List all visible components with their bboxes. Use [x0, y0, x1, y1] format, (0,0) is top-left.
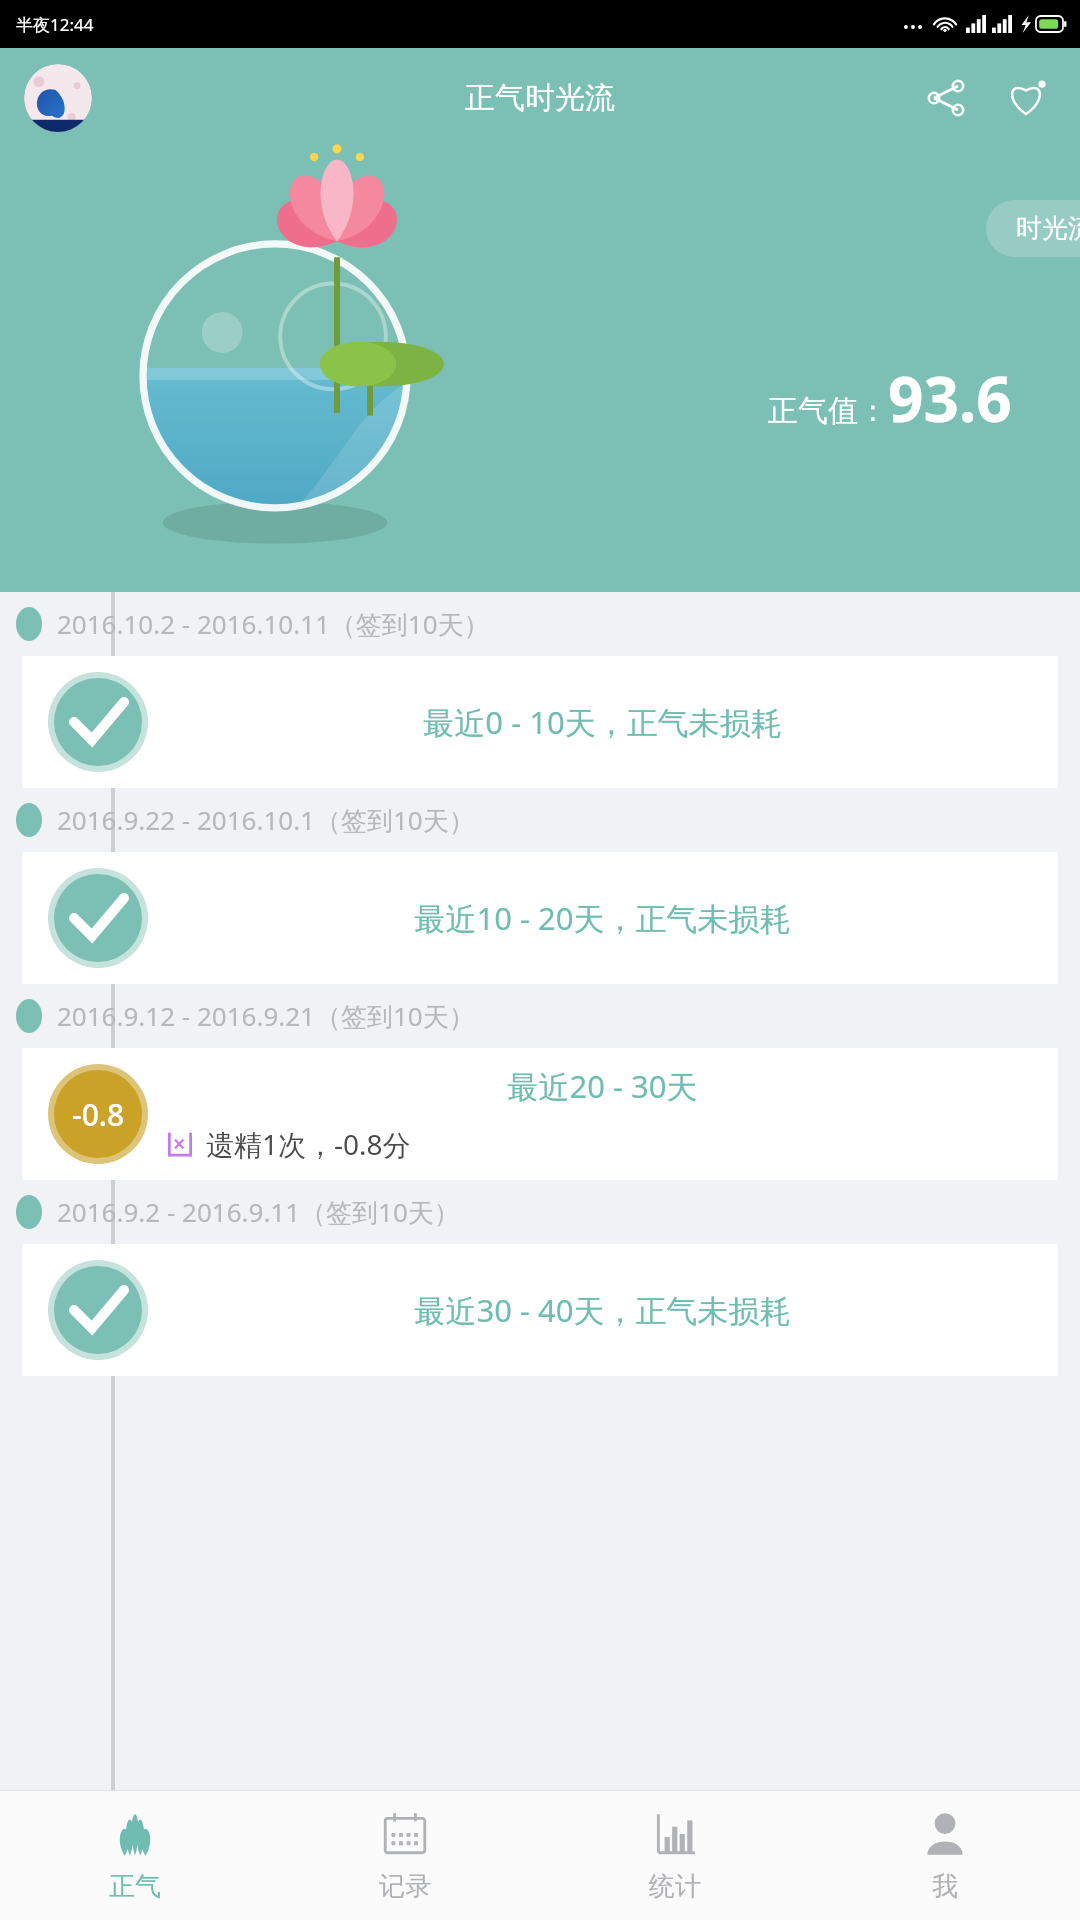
staticText: 正气: [109, 1870, 161, 1903]
button[interactable]: 最近30 - 40天，正气未损耗: [22, 1244, 1058, 1376]
button[interactable]: 统计: [540, 1791, 810, 1920]
staticText: 半夜12:44: [16, 13, 94, 36]
staticText: 正气值：: [768, 392, 888, 430]
button[interactable]: 最近10 - 20天，正气未损耗: [22, 852, 1058, 984]
staticText: 2016.9.22 - 2016.10.1（签到10天）: [57, 802, 475, 838]
staticText: 93.6: [888, 356, 1012, 440]
button[interactable]: Profile: [24, 64, 92, 132]
button[interactable]: 记录: [270, 1791, 540, 1920]
button[interactable]: 我: [810, 1791, 1080, 1920]
staticText: 遗精1次，-0.8分: [206, 1125, 411, 1163]
staticText: 最近30 - 40天，正气未损耗: [414, 1289, 791, 1331]
staticText: 2016.10.2 - 2016.10.11（签到10天）: [57, 606, 490, 642]
button[interactable]: -0.8: [22, 1048, 1058, 1180]
staticText: 最近20 - 30天: [507, 1065, 698, 1107]
staticText: 2016.9.2 - 2016.9.11（签到10天）: [57, 1194, 460, 1230]
staticText: 记录: [379, 1870, 431, 1903]
staticText: 时光流: [1016, 212, 1080, 245]
staticText: 最近0 - 10天，正气未损耗: [423, 701, 782, 743]
button[interactable]: 时光流: [986, 200, 1080, 257]
staticText: 我: [932, 1870, 958, 1903]
button[interactable]: 正气: [0, 1791, 270, 1920]
button[interactable]: Favorite: [998, 70, 1054, 126]
button[interactable]: Share: [918, 70, 974, 126]
staticText: 正气时光流: [465, 79, 615, 117]
staticText: 2016.9.12 - 2016.9.21（签到10天）: [57, 998, 475, 1034]
staticText: 统计: [649, 1870, 701, 1903]
button[interactable]: 最近0 - 10天，正气未损耗: [22, 656, 1058, 788]
staticText: -0.8: [72, 1094, 125, 1135]
staticText: 最近10 - 20天，正气未损耗: [414, 897, 791, 939]
